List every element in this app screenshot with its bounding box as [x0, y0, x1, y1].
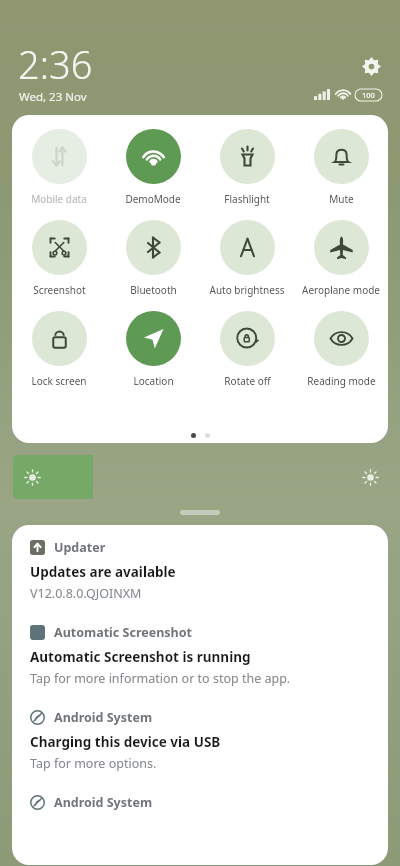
button[interactable]: Settings — [356, 51, 386, 81]
staticText: Automatic Screenshot is running — [30, 648, 251, 666]
staticText: Location — [133, 374, 174, 388]
button[interactable]: Rotate off — [200, 311, 294, 388]
button[interactable]: Bluetooth — [106, 220, 200, 297]
button[interactable]: Automatic Screenshot — [12, 610, 388, 695]
button[interactable]: Flashlight — [200, 129, 294, 206]
staticText: Mobile data — [31, 192, 87, 206]
staticText: Android System — [54, 709, 153, 726]
button[interactable]: Aeroplane mode — [294, 220, 388, 297]
button[interactable]: DemoMode — [106, 129, 200, 206]
staticText: Reading mode — [307, 374, 376, 388]
button[interactable]: Android System — [12, 695, 388, 780]
button[interactable]: Auto brightness — [200, 220, 294, 297]
button[interactable]: Lock screen — [12, 311, 106, 388]
staticText: Aeroplane mode — [302, 283, 380, 297]
staticText: Charging this device via USB — [30, 733, 221, 751]
button[interactable]: Brightness — [13, 455, 387, 499]
staticText: V12.0.8.0.QJOINXM — [30, 585, 142, 602]
staticText: DemoMode — [125, 192, 181, 206]
button[interactable]: Location — [106, 311, 200, 388]
staticText: Flashlight — [224, 192, 270, 206]
staticText: Updater — [54, 539, 106, 556]
staticText: Wed, 23 Nov — [19, 89, 87, 105]
staticText: Bluetooth — [130, 283, 177, 297]
staticText: Mute — [329, 192, 354, 206]
staticText: Android System — [54, 794, 153, 811]
button[interactable]: Reading mode — [294, 311, 388, 388]
button[interactable]: Updater — [12, 525, 388, 610]
button[interactable]: Android System — [12, 780, 388, 819]
staticText: Tap for more options. — [30, 755, 157, 772]
button[interactable]: Mute — [294, 129, 388, 206]
button[interactable]: Mobile data — [12, 129, 106, 206]
staticText: Automatic Screenshot — [54, 624, 192, 641]
staticText: 2:36 — [18, 38, 93, 90]
staticText: Tap for more information or to stop the … — [30, 670, 291, 687]
staticText: Updates are available — [30, 563, 176, 581]
staticText: Lock screen — [31, 374, 87, 388]
staticText: 100 — [362, 90, 375, 100]
staticText: Screenshot — [33, 283, 86, 297]
staticText: Rotate off — [224, 374, 271, 388]
button[interactable]: Screenshot — [12, 220, 106, 297]
staticText: Auto brightness — [209, 283, 285, 297]
